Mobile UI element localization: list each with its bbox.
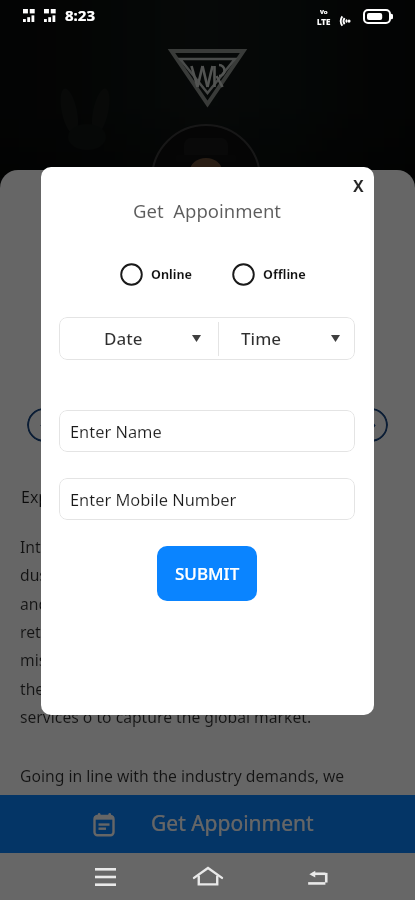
staticText: dustry experts who are highly skilled — [20, 564, 290, 585]
staticText: Offline — [263, 266, 306, 283]
staticText: LTE — [317, 16, 331, 27]
button[interactable]: Time — [219, 317, 355, 360]
staticText: Experience — [21, 486, 104, 508]
staticText: them with better business solutions and — [20, 678, 316, 699]
staticText: mission of our clients by providing — [20, 649, 273, 670]
staticText: and knowledgeable in their respective — [20, 593, 300, 614]
button[interactable]: SUBMIT — [157, 546, 257, 601]
button[interactable]: Next — [354, 408, 388, 442]
button[interactable]: Offline — [232, 263, 306, 286]
staticText: Time — [241, 327, 282, 350]
button[interactable]: Enter Mobile Number — [59, 478, 355, 520]
staticText: 8:23 — [65, 5, 95, 25]
button[interactable]: Get Appoinment — [0, 795, 415, 853]
staticText: X — [353, 175, 364, 197]
staticText: services o to capture the global market. — [20, 706, 312, 727]
staticText: Online — [151, 266, 193, 283]
staticText: Introducing our world-class team of in — [20, 536, 302, 557]
button[interactable]: Close — [341, 169, 374, 203]
staticText: SUBMIT — [175, 562, 240, 585]
button[interactable]: Home — [186, 855, 230, 899]
staticText: Enter Mobile Number — [70, 488, 237, 510]
staticText: Going in line with the industry demands,… — [20, 765, 345, 786]
button[interactable]: Date — [59, 317, 218, 360]
button[interactable]: Previous — [27, 408, 61, 442]
staticText: retail domains. we help in fulfilling th… — [20, 621, 302, 642]
button[interactable]: Enter Name — [59, 410, 355, 452]
button[interactable]: Back — [296, 855, 340, 899]
staticText: Date — [104, 327, 143, 350]
staticText: Get Appoinment — [151, 809, 314, 838]
staticText: Get Appoinment — [133, 198, 282, 223]
button[interactable]: Recent apps — [83, 855, 127, 899]
staticText: Vo — [320, 8, 328, 16]
staticText: Enter Name — [70, 420, 162, 442]
button[interactable]: Online — [120, 263, 193, 286]
